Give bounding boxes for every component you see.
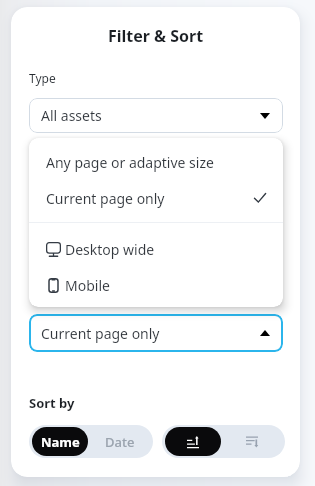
staticText: Sort by [29, 394, 75, 412]
button[interactable]: Sort ascending [165, 427, 221, 456]
button[interactable]: Mobile [29, 267, 283, 303]
staticText: Type [29, 70, 56, 86]
button[interactable]: Name [32, 427, 88, 456]
button[interactable]: Date [90, 427, 150, 456]
button[interactable]: Any page or adaptive size [29, 144, 283, 180]
button[interactable]: Current page only [29, 314, 283, 352]
button[interactable]: Desktop wide [29, 231, 283, 267]
staticText: Mobile [65, 276, 110, 295]
staticText: All assets [41, 106, 102, 125]
staticText: Current page only [41, 324, 160, 343]
staticText: Name [41, 433, 80, 451]
button[interactable]: All assets [29, 98, 283, 133]
button[interactable]: Sort descending [222, 427, 282, 456]
staticText: Date [105, 433, 135, 451]
staticText: Current page only [46, 189, 165, 208]
staticText: Desktop wide [65, 240, 155, 259]
staticText: Filter & Sort [11, 25, 300, 47]
staticText: Any page or adaptive size [46, 153, 214, 172]
button[interactable]: Current page only [29, 180, 283, 216]
